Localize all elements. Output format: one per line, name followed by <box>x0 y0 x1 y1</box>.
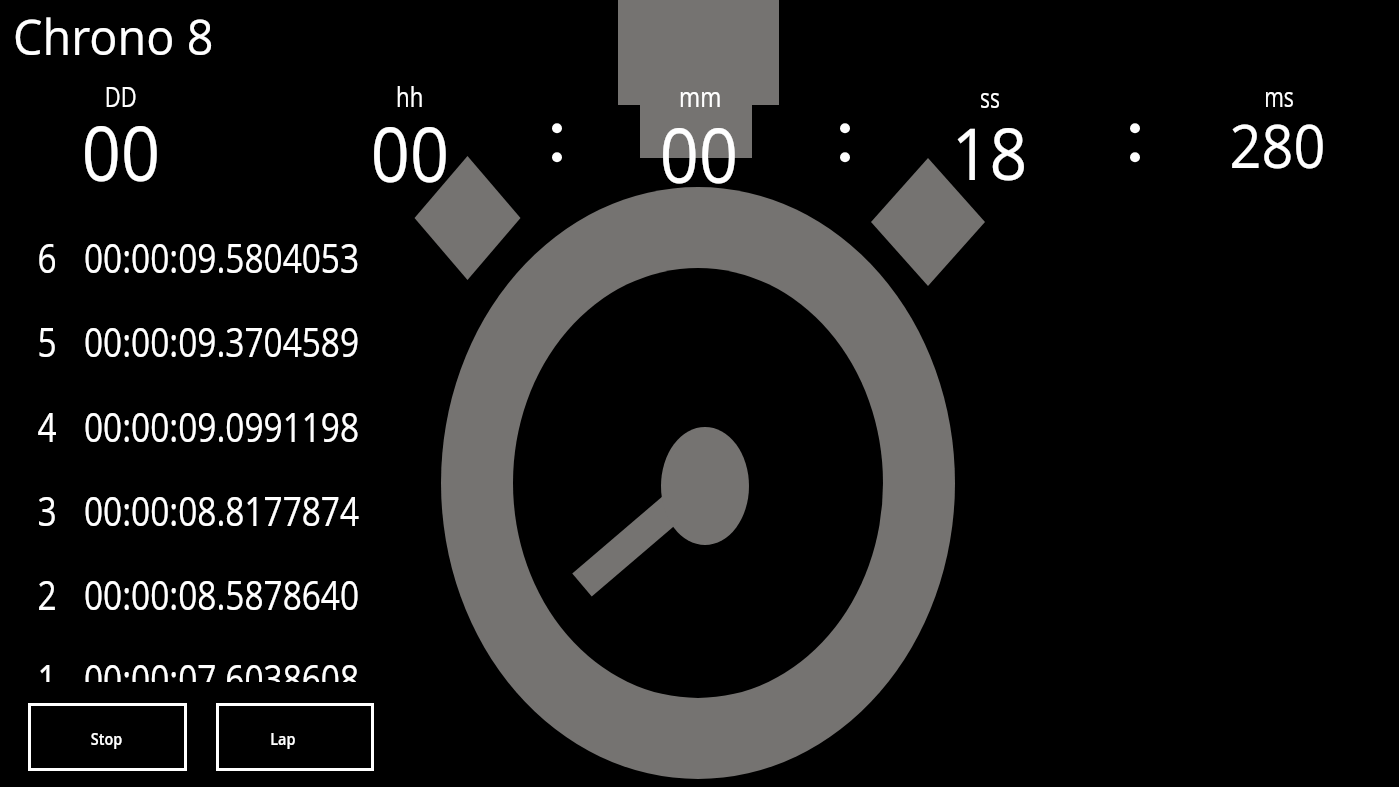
staticText: 00:00:09.3704589 <box>84 313 359 369</box>
staticText: 5 <box>37 313 57 369</box>
staticText: Chrono 8 <box>13 2 214 70</box>
staticText: 00:00:08.5878640 <box>84 566 359 622</box>
button[interactable] <box>216 703 374 771</box>
staticText: 18 <box>952 104 1028 201</box>
staticText: 00 <box>660 103 738 205</box>
staticText: ss <box>980 79 1000 116</box>
staticText: DD <box>105 78 137 115</box>
staticText: 1 <box>37 650 57 682</box>
staticText: 6 <box>37 229 57 285</box>
staticText: Lap <box>270 727 296 750</box>
button[interactable] <box>28 703 187 771</box>
staticText: 00 <box>371 102 449 204</box>
staticText: 00:00:07.6038608 <box>84 650 359 682</box>
staticText: 00:00:09.5804053 <box>84 229 359 285</box>
staticText: 2 <box>37 566 57 622</box>
staticText: 3 <box>37 482 57 538</box>
staticText: mm <box>679 78 722 115</box>
staticText: hh <box>396 78 424 115</box>
staticText: ms <box>1264 78 1294 115</box>
staticText: 4 <box>37 398 57 454</box>
staticText: 00:00:08.8177874 <box>84 482 359 538</box>
staticText: 280 <box>1230 104 1325 186</box>
staticText: Stop <box>91 727 123 750</box>
staticText: 00:00:09.0991198 <box>84 398 359 454</box>
staticText: 00 <box>82 101 160 203</box>
